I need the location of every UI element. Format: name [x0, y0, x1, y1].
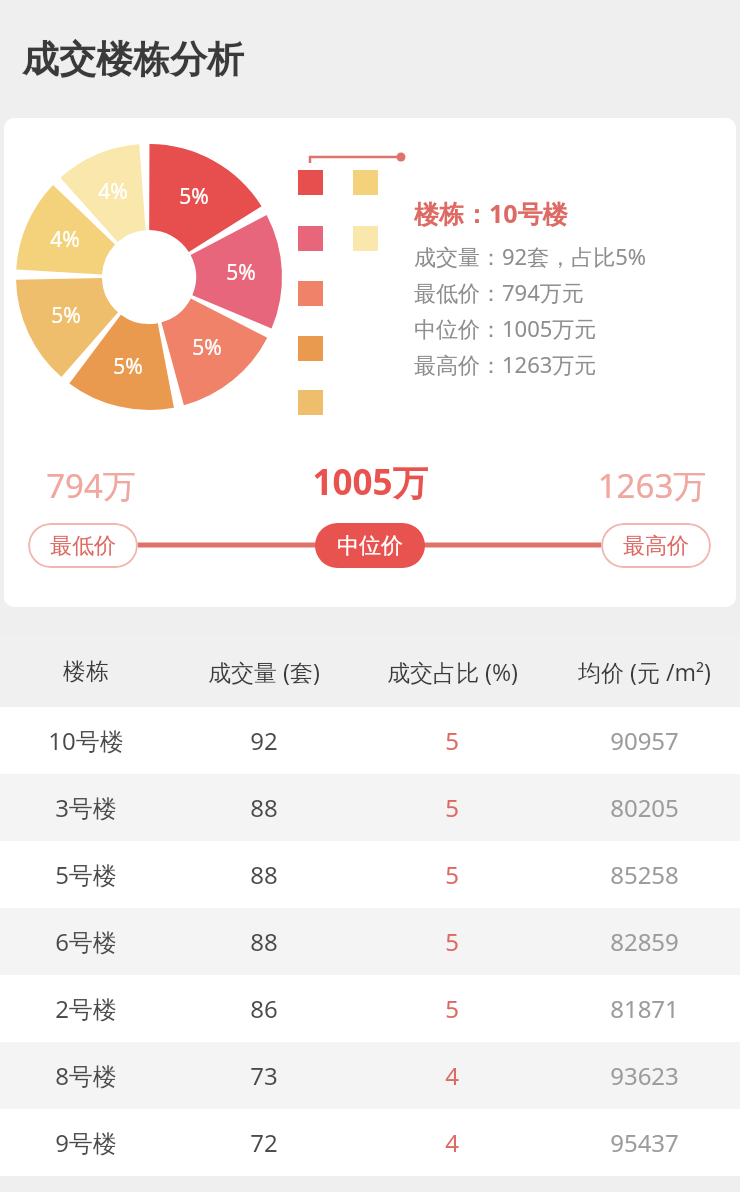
button[interactable]: 最高价: [601, 523, 711, 568]
staticText: 92: [250, 724, 278, 757]
staticText: 90957: [610, 724, 679, 757]
staticText: 5号楼: [55, 858, 117, 891]
staticText: 85258: [610, 858, 679, 891]
staticText: 中位价：1005万元: [414, 313, 597, 343]
staticText: 最低价：794万元: [414, 277, 584, 307]
staticText: 最高价：1263万元: [414, 349, 597, 379]
staticText: 5: [445, 724, 459, 757]
staticText: 10号楼: [48, 724, 124, 757]
staticText: 81871: [610, 992, 679, 1025]
staticText: 成交量 (套): [208, 656, 320, 687]
staticText: 成交占比 (%): [387, 656, 518, 687]
staticText: 成交量：92套，占比5%: [414, 241, 647, 271]
button[interactable]: 3号楼: [0, 774, 740, 841]
button[interactable]: 6号楼: [0, 908, 740, 975]
staticText: 均价 (元 /m²): [578, 656, 711, 687]
button[interactable]: 10号楼: [0, 707, 740, 774]
button[interactable]: 8号楼: [0, 1042, 740, 1109]
staticText: 楼栋: [63, 657, 109, 686]
button[interactable]: 2号楼: [0, 975, 740, 1042]
staticText: 88: [250, 925, 278, 958]
staticText: 楼栋：10号楼: [414, 196, 568, 230]
staticText: 794万: [26, 463, 156, 508]
staticText: 5: [445, 791, 459, 824]
staticText: 5%: [221, 258, 261, 287]
staticText: 最高价: [623, 532, 689, 560]
staticText: 5: [445, 858, 459, 891]
staticText: 93623: [610, 1059, 679, 1092]
staticText: 5%: [187, 333, 227, 362]
staticText: 5%: [108, 352, 148, 381]
button[interactable]: 中位价: [315, 523, 425, 568]
staticText: 4: [445, 1126, 459, 1159]
staticText: 最低价: [50, 532, 116, 560]
staticText: 88: [250, 858, 278, 891]
staticText: 2号楼: [55, 992, 117, 1025]
button[interactable]: 最低价: [28, 523, 138, 568]
button[interactable]: 9号楼: [0, 1109, 740, 1176]
staticText: 5%: [174, 182, 214, 211]
staticText: 成交楼栋分析: [22, 36, 244, 83]
staticText: 86: [250, 992, 278, 1025]
staticText: 95437: [610, 1126, 679, 1159]
staticText: 80205: [610, 791, 679, 824]
staticText: 88: [250, 791, 278, 824]
staticText: 1005万: [295, 458, 445, 506]
staticText: 中位价: [337, 532, 403, 560]
staticText: 3号楼: [55, 791, 117, 824]
staticText: 4%: [93, 177, 133, 206]
staticText: 5: [445, 992, 459, 1025]
staticText: 5: [445, 925, 459, 958]
staticText: 1263万: [582, 463, 722, 508]
button[interactable]: 5号楼: [0, 841, 740, 908]
staticText: 73: [250, 1059, 278, 1092]
staticText: 4%: [45, 225, 85, 254]
staticText: 5%: [46, 301, 86, 330]
staticText: 82859: [610, 925, 679, 958]
staticText: 8号楼: [55, 1059, 117, 1092]
staticText: 9号楼: [55, 1126, 117, 1159]
staticText: 4: [445, 1059, 459, 1092]
staticText: 6号楼: [55, 925, 117, 958]
staticText: 72: [250, 1126, 278, 1159]
